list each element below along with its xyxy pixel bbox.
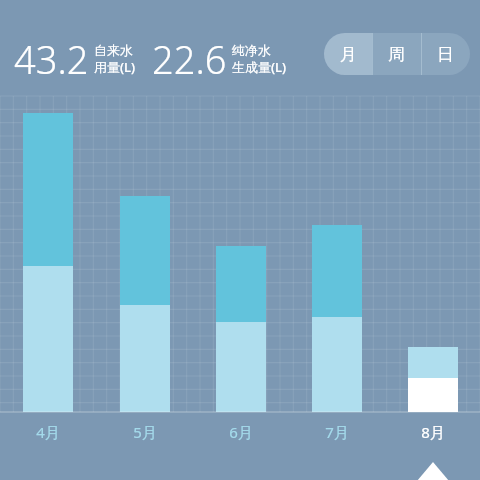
staticText: 纯净水 <box>232 42 271 58</box>
button[interactable]: 周 <box>372 33 421 75</box>
staticText: 日 <box>437 44 454 65</box>
staticText: 用量(L) <box>94 58 136 76</box>
staticText: 周 <box>388 44 405 65</box>
staticText: 8月 <box>403 422 463 442</box>
staticText: 月 <box>340 44 357 65</box>
staticText: 43.2 <box>14 33 89 85</box>
staticText: 22.6 <box>152 33 227 85</box>
staticText: 4月 <box>18 422 78 442</box>
button[interactable]: 月 <box>324 33 372 75</box>
staticText: 自来水 <box>94 42 133 58</box>
staticText: 7月 <box>307 422 367 442</box>
staticText: 生成量(L) <box>232 58 287 76</box>
staticText: 5月 <box>115 422 175 442</box>
staticText: 6月 <box>211 422 271 442</box>
button[interactable]: 日 <box>421 33 470 75</box>
